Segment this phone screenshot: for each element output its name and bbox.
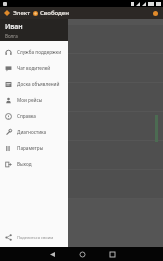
button[interactable]: Чат водителей	[0, 60, 68, 76]
button[interactable]: Последние приложения	[97, 247, 127, 261]
button[interactable]	[0, 25, 163, 53]
staticText: Диагностика	[17, 129, 47, 135]
button[interactable]	[0, 170, 163, 198]
staticText: Параметры	[17, 145, 44, 151]
button[interactable]: Доска объявлений	[0, 76, 68, 92]
button[interactable]	[0, 112, 163, 140]
button[interactable]: Профиль	[150, 8, 160, 18]
button[interactable]: Справка	[0, 108, 68, 124]
button[interactable]: Служба поддержки	[0, 44, 68, 60]
staticText: Элект	[13, 9, 30, 17]
button[interactable]: Поделиться своим маршрутом	[0, 230, 68, 244]
button[interactable]	[0, 54, 163, 82]
button[interactable]: Параметры	[0, 140, 68, 156]
staticText: Чат водителей	[17, 65, 51, 71]
staticText: Иван	[5, 22, 23, 32]
button[interactable]	[0, 83, 163, 111]
staticText: Поделиться своим маршрутом	[17, 235, 68, 240]
button[interactable]: Мои рейсы	[0, 92, 68, 108]
staticText: Волга	[5, 33, 18, 39]
button[interactable]: Выход	[0, 156, 68, 172]
button[interactable]	[0, 141, 163, 169]
staticText: Служба поддержки	[17, 49, 62, 55]
staticText: Справка	[17, 113, 36, 119]
staticText: Доска объявлений	[17, 81, 60, 87]
staticText: Свободен	[40, 9, 69, 17]
button[interactable]: Домой	[67, 247, 97, 261]
button[interactable]: Иван	[0, 19, 68, 41]
button[interactable]: Диагностика	[0, 124, 68, 140]
staticText: Мои рейсы	[17, 97, 43, 103]
button[interactable]: Назад	[37, 247, 67, 261]
staticText: Выход	[17, 161, 32, 167]
button[interactable]: Навигация	[3, 9, 11, 17]
